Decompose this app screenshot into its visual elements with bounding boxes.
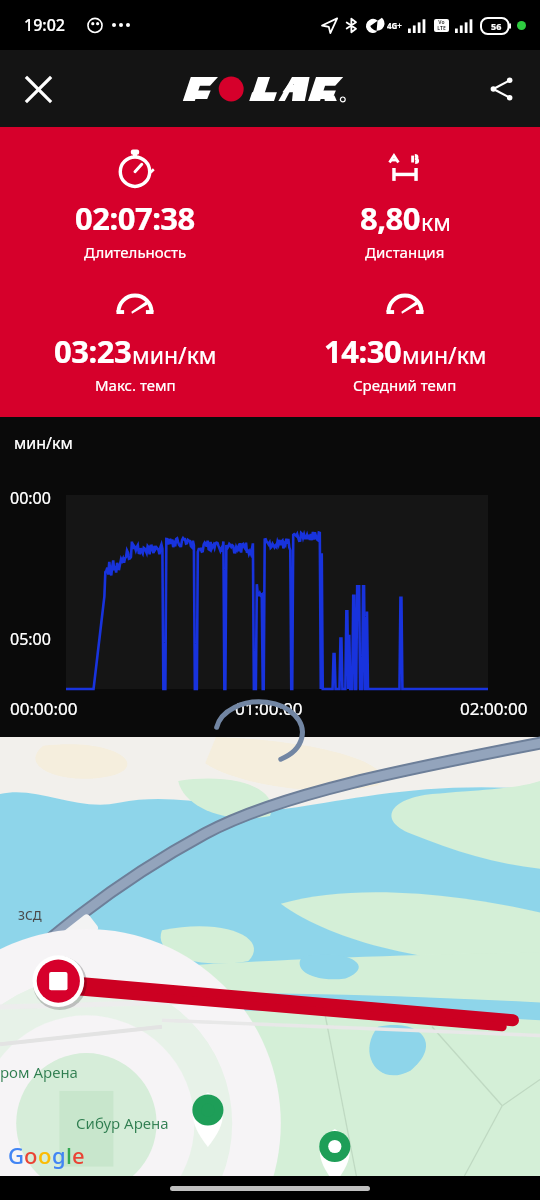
button[interactable]: 14:30 xyxy=(270,278,540,395)
staticText: 56 xyxy=(491,20,502,32)
staticText: 02:07:38 xyxy=(75,197,195,239)
staticText: o xyxy=(38,1140,52,1170)
staticText: Средний темп xyxy=(353,375,457,395)
button[interactable]: Close xyxy=(14,65,62,113)
staticText: ром Арена xyxy=(0,1062,78,1082)
staticText: G xyxy=(8,1140,24,1170)
staticText: 02:00:00 xyxy=(460,697,528,720)
button[interactable]: 02:07:38 xyxy=(0,145,270,262)
staticText: 00:00 xyxy=(10,487,51,509)
staticText: 05:00 xyxy=(10,628,51,650)
staticText: 14:30 xyxy=(324,330,402,372)
staticText: 03:23 xyxy=(54,330,132,372)
staticText: 01:00:00 xyxy=(235,697,303,720)
staticText: мин/км xyxy=(132,339,217,370)
staticText: 8,80 xyxy=(360,197,421,239)
staticText: 4G+ xyxy=(387,20,402,31)
staticText: Длительность xyxy=(84,242,187,262)
staticText: e xyxy=(72,1140,85,1170)
staticText: 19:02 xyxy=(24,14,65,36)
staticText: ЗСД xyxy=(18,907,42,923)
staticText: g xyxy=(52,1140,66,1170)
staticText: км xyxy=(421,206,451,237)
staticText: Дистанция xyxy=(365,242,445,262)
staticText: 00:00:00 xyxy=(10,697,78,720)
staticText: l xyxy=(66,1140,72,1170)
staticText: мин/км xyxy=(14,432,73,454)
button[interactable]: 8,80 xyxy=(270,145,540,262)
staticText: Vo LTE xyxy=(437,19,446,32)
button[interactable]: Share xyxy=(478,65,526,113)
staticText: o xyxy=(24,1140,38,1170)
button[interactable]: ЗСД xyxy=(0,737,540,1176)
staticText: Сибур Арена xyxy=(76,1113,169,1133)
button[interactable]: 03:23 xyxy=(0,278,270,395)
staticText: мин/км xyxy=(402,339,487,370)
staticText: Макс. темп xyxy=(95,375,176,395)
